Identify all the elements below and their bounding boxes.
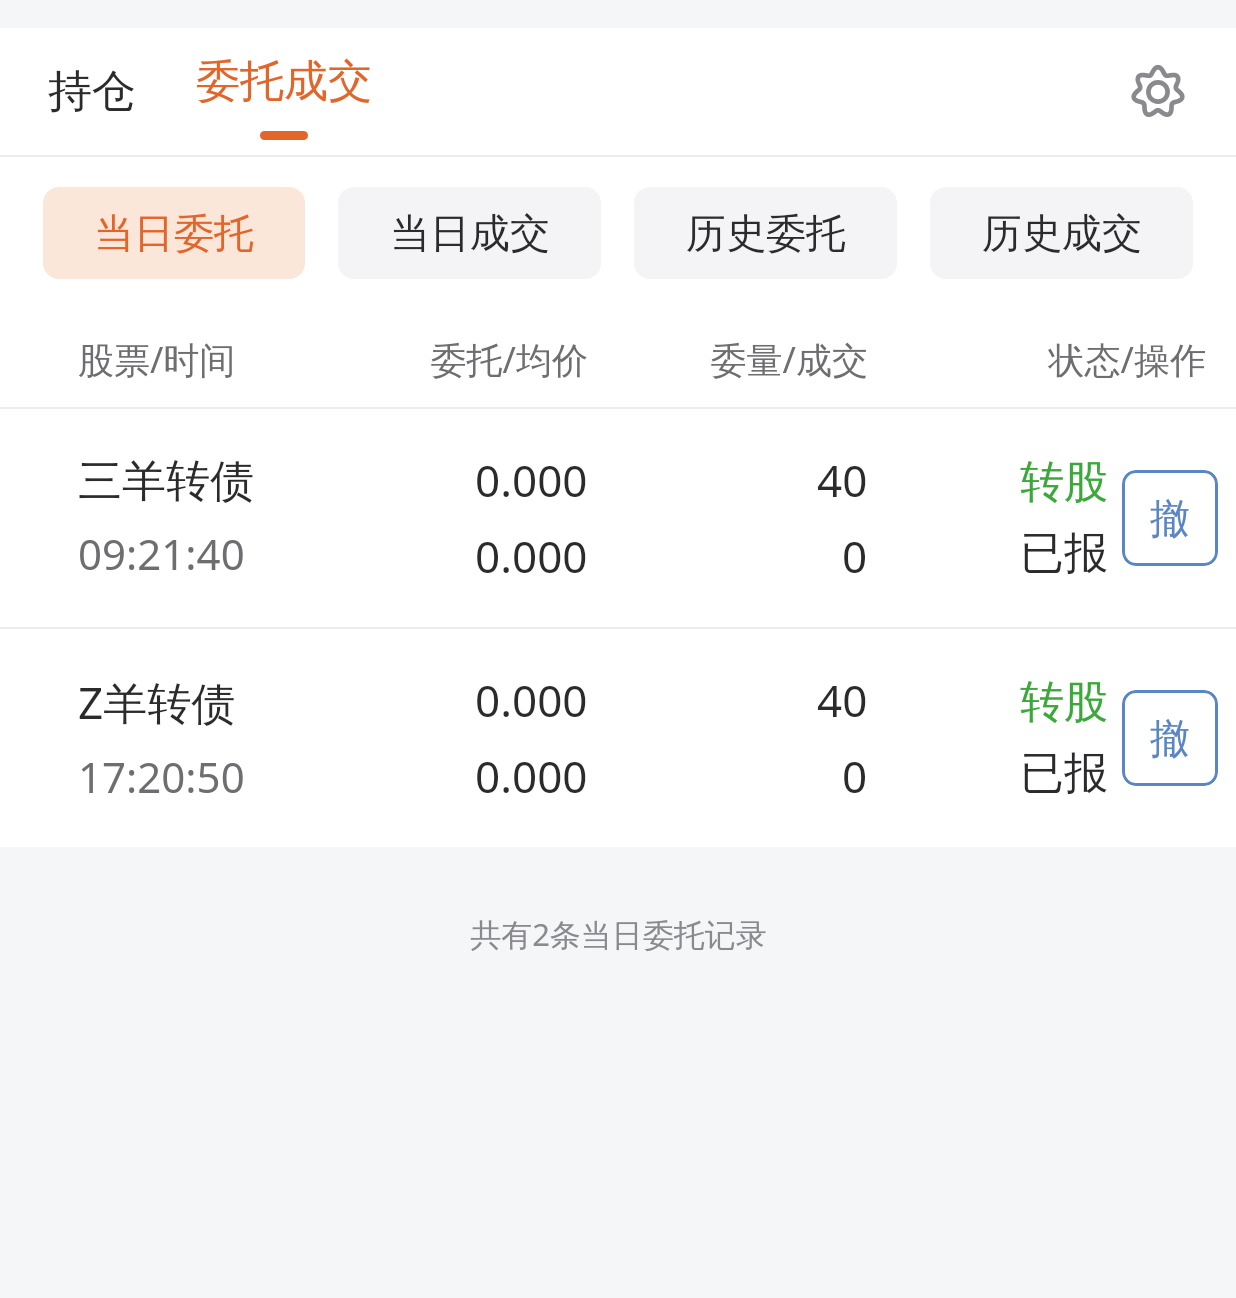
staticText: 0.000 bbox=[475, 670, 588, 730]
staticText: 历史委托 bbox=[686, 208, 846, 258]
staticText: 共有2条当日委托记录 bbox=[470, 913, 767, 955]
staticText: 股票/时间 bbox=[78, 335, 378, 384]
staticText: 0 bbox=[842, 526, 868, 586]
button[interactable]: 历史委托 bbox=[634, 187, 897, 279]
staticText: 撤 bbox=[1150, 493, 1190, 543]
staticText: 40 bbox=[817, 450, 868, 510]
button[interactable]: Settings bbox=[1118, 52, 1198, 132]
staticText: 09:21:40 bbox=[78, 525, 245, 582]
button[interactable]: 撤 bbox=[1122, 470, 1218, 566]
staticText: 40 bbox=[817, 670, 868, 730]
button[interactable]: 持仓 bbox=[30, 50, 154, 133]
staticText: 历史成交 bbox=[982, 208, 1142, 258]
staticText: 0 bbox=[842, 746, 868, 806]
staticText: 已报 bbox=[1020, 746, 1108, 801]
staticText: 委托/均价 bbox=[378, 335, 588, 384]
staticText: 0.000 bbox=[475, 746, 588, 806]
staticText: 转股 bbox=[1020, 455, 1108, 510]
staticText: Z羊转债 bbox=[78, 672, 236, 732]
staticText: 撤 bbox=[1150, 713, 1190, 763]
button[interactable]: 撤 bbox=[1122, 690, 1218, 786]
staticText: 0.000 bbox=[475, 450, 588, 510]
staticText: 当日成交 bbox=[390, 208, 550, 258]
staticText: 0.000 bbox=[475, 526, 588, 586]
staticText: 转股 bbox=[1020, 675, 1108, 730]
staticText: 状态/操作 bbox=[868, 335, 1206, 384]
staticText: 已报 bbox=[1020, 526, 1108, 581]
staticText: 当日委托 bbox=[94, 208, 254, 258]
button[interactable]: 当日成交 bbox=[338, 187, 601, 279]
button[interactable]: 当日委托 bbox=[43, 187, 305, 279]
button[interactable]: 三羊转债 bbox=[0, 409, 1236, 627]
button[interactable]: 委托成交 bbox=[178, 44, 390, 140]
staticText: 三羊转债 bbox=[78, 454, 254, 509]
staticText: 委量/成交 bbox=[588, 335, 868, 384]
staticText: 17:20:50 bbox=[78, 748, 245, 805]
staticText: 持仓 bbox=[48, 64, 136, 119]
staticText: 委托成交 bbox=[196, 54, 372, 109]
button[interactable]: Z羊转债 bbox=[0, 629, 1236, 847]
button[interactable]: 历史成交 bbox=[930, 187, 1193, 279]
